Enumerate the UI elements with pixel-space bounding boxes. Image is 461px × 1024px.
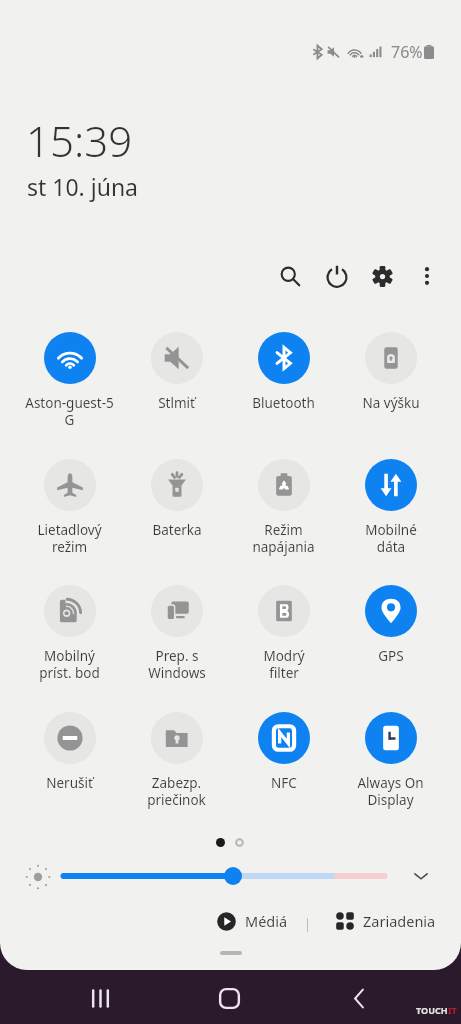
button[interactable]: Prep. s Windows	[123, 585, 230, 682]
staticText: Bluetooth	[252, 394, 315, 412]
button[interactable]: Zariadenia	[336, 911, 436, 931]
staticText: NFC	[271, 774, 297, 792]
button[interactable]: Power off	[315, 254, 359, 298]
button[interactable]: NFC	[230, 712, 337, 792]
staticText: IT	[448, 1004, 457, 1016]
staticText: st 10. júna	[27, 171, 139, 202]
staticText: Na výšku	[362, 394, 420, 412]
button[interactable]: Lietadlový režim	[16, 459, 123, 556]
button[interactable]: Brightness	[224, 867, 242, 885]
button[interactable]: Recents	[78, 976, 122, 1020]
staticText: Mobilné dáta	[365, 521, 417, 556]
button[interactable]: Mobilné dáta	[337, 459, 444, 556]
staticText: GPS	[378, 647, 404, 665]
staticText: Mobilný príst. bod	[39, 647, 100, 682]
staticText: Médiá	[245, 911, 288, 931]
button[interactable]: Settings	[360, 254, 404, 298]
staticText: Režim napájania	[252, 521, 315, 556]
staticText: Always On Display	[357, 774, 424, 809]
button[interactable]: Baterka	[123, 459, 230, 539]
button[interactable]: Home	[207, 976, 251, 1020]
staticText: 15:39	[26, 112, 133, 169]
staticText: Aston-guest-5 G	[25, 394, 114, 429]
staticText: Baterka	[152, 521, 202, 539]
button[interactable]: Aston-guest-5 G	[16, 332, 123, 429]
staticText: Zabezp. priečinok	[147, 774, 206, 809]
button[interactable]: Stlmiť	[123, 332, 230, 412]
button[interactable]: Médiá	[217, 911, 288, 931]
staticText: TOUCH	[416, 1004, 448, 1016]
staticText: Prep. s Windows	[148, 647, 206, 682]
button[interactable]: Modrý filter	[230, 585, 337, 682]
button[interactable]: Mobilný príst. bod	[16, 585, 123, 682]
button[interactable]: Na výšku	[337, 332, 444, 412]
button[interactable]: GPS	[337, 585, 444, 665]
button[interactable]: Always On Display	[337, 712, 444, 809]
button[interactable]: More options	[405, 254, 449, 298]
staticText: Modrý filter	[263, 647, 305, 682]
staticText: Nerušiť	[46, 774, 93, 792]
button[interactable]: Search	[268, 254, 312, 298]
staticText: Lietadlový režim	[37, 521, 102, 556]
button[interactable]: Back	[336, 976, 380, 1020]
button[interactable]: Nerušiť	[16, 712, 123, 792]
staticText: 76%	[391, 41, 423, 63]
staticText: Zariadenia	[363, 911, 436, 931]
button[interactable]: Bluetooth	[230, 332, 337, 412]
button[interactable]: Expand	[406, 861, 436, 891]
button[interactable]: Režim napájania	[230, 459, 337, 556]
button[interactable]: Zabezp. priečinok	[123, 712, 230, 809]
staticText: Stlmiť	[158, 394, 195, 412]
